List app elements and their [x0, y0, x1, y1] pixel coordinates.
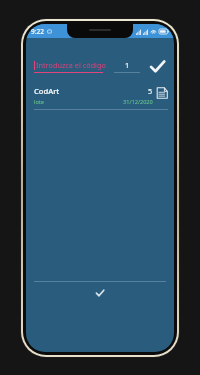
staticText: 31/12/2020	[123, 98, 153, 106]
staticText: Introduzca el código	[36, 60, 106, 70]
button[interactable]: Introduzca el código	[34, 60, 108, 73]
staticText: 1	[125, 60, 130, 70]
button[interactable]: 1	[114, 60, 140, 73]
staticText: 9:22	[31, 27, 44, 36]
button[interactable]: Aceptar	[26, 282, 174, 304]
staticText: lote	[34, 98, 45, 106]
staticText: 5	[148, 86, 153, 96]
button[interactable]: Confirmar código	[146, 55, 168, 77]
button[interactable]: CodArt	[26, 86, 174, 110]
button[interactable]: Detalle del artículo	[156, 87, 168, 99]
staticText: CodArt	[34, 86, 60, 96]
